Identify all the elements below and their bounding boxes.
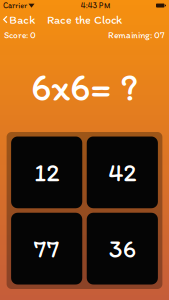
button[interactable]: 12 [11,136,82,208]
staticText: 42 [108,157,136,188]
staticText: Score: 0 [4,29,36,41]
staticText: 77 [34,233,60,264]
staticText: Remaining: 07 [108,29,165,41]
staticText: 12 [34,157,59,188]
staticText: Carrier [3,1,27,10]
button[interactable]: Back [0,11,38,28]
staticText: Back [9,12,35,27]
button[interactable]: 42 [87,136,158,208]
staticText: 36 [109,233,136,264]
button[interactable]: 36 [87,213,158,285]
staticText: 6x6= ? [31,64,138,110]
staticText: 4:43 PM [81,1,110,10]
staticText: Race the Clock [47,12,122,27]
button[interactable]: 77 [11,213,82,285]
